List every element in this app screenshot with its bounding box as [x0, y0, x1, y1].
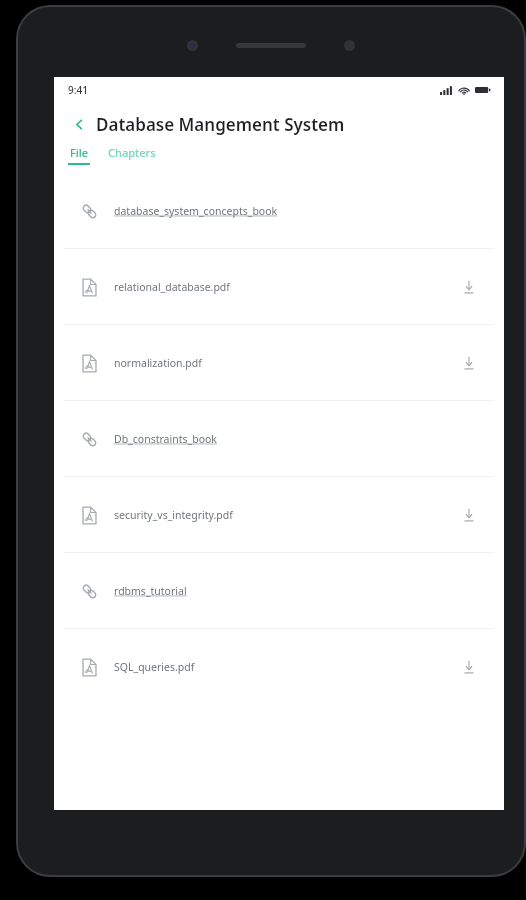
- button[interactable]: File: [68, 145, 90, 165]
- button[interactable]: Chapters: [108, 145, 156, 160]
- button[interactable]: Db_constraints_book: [64, 401, 494, 476]
- button[interactable]: normalization.pdf: [64, 325, 494, 400]
- staticText: Chapters: [108, 145, 156, 160]
- staticText: SQL_queries.pdf: [114, 660, 195, 674]
- staticText: File: [70, 145, 89, 160]
- button[interactable]: Download: [458, 504, 480, 526]
- staticText: rdbms_tutorial: [114, 584, 187, 598]
- button[interactable]: SQL_queries.pdf: [64, 629, 494, 704]
- button[interactable]: relational_database.pdf: [64, 249, 494, 324]
- button[interactable]: security_vs_integrity.pdf: [64, 477, 494, 552]
- staticText: security_vs_integrity.pdf: [114, 508, 233, 522]
- staticText: Db_constraints_book: [114, 432, 217, 446]
- staticText: 9:41: [68, 83, 88, 97]
- button[interactable]: database_system_concepts_book: [64, 173, 494, 248]
- button[interactable]: Back: [66, 111, 92, 137]
- staticText: normalization.pdf: [114, 356, 202, 370]
- staticText: database_system_concepts_book: [114, 204, 278, 218]
- button[interactable]: Download: [458, 656, 480, 678]
- staticText: Database Mangement System: [96, 113, 345, 136]
- button[interactable]: Download: [458, 276, 480, 298]
- staticText: relational_database.pdf: [114, 280, 230, 294]
- button[interactable]: Download: [458, 352, 480, 374]
- button[interactable]: rdbms_tutorial: [64, 553, 494, 628]
